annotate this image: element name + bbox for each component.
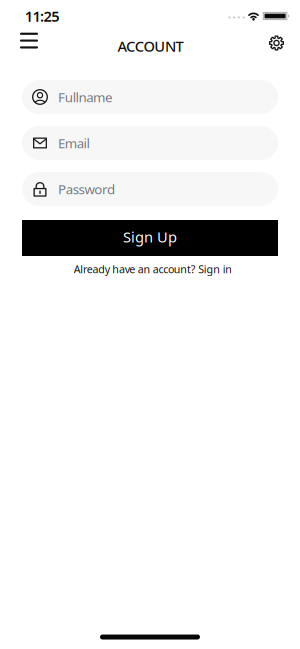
staticText: Sign Up — [123, 227, 177, 247]
button[interactable]: Sign Up — [22, 220, 278, 256]
staticText: 11:25 — [25, 6, 59, 26]
button[interactable]: Already have an account? Sign in — [74, 262, 232, 276]
staticText: Password — [58, 180, 115, 198]
button[interactable]: Fullname — [22, 80, 278, 114]
button[interactable]: Password — [22, 172, 278, 206]
staticText: Fullname — [58, 88, 113, 106]
staticText: Email — [58, 134, 89, 152]
button[interactable]: Settings — [265, 31, 288, 54]
button[interactable]: Menu — [16, 29, 42, 52]
staticText: Already have an account? Sign in — [74, 262, 232, 276]
staticText: ACCOUNT — [117, 36, 184, 56]
button[interactable]: Email — [22, 126, 278, 160]
